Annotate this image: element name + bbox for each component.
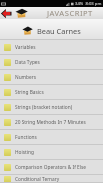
button[interactable]: Back: [0, 7, 14, 19]
staticText: Conditional Ternary: [15, 176, 60, 183]
staticText: Variables: [15, 44, 36, 51]
button[interactable]: Hoisting: [0, 145, 103, 160]
staticText: Hoisting: [15, 149, 34, 156]
staticText: Comparison Operators & If Else: [15, 164, 87, 171]
staticText: JAVASCRIPT: [47, 8, 93, 18]
staticText: Beau Carnes: [37, 26, 81, 36]
button[interactable]: Functions: [0, 130, 103, 145]
button[interactable]: Data Types: [0, 55, 103, 70]
button[interactable]: Beau Carnes: [0, 19, 103, 40]
staticText: Data Types: [15, 59, 40, 66]
button[interactable]: String Basics: [0, 85, 103, 100]
button[interactable]: Variables: [0, 40, 103, 55]
staticText: Strings (bracket notation): [15, 104, 73, 111]
button[interactable]: Comparison Operators & If Else: [0, 160, 103, 175]
staticText: 20 String Methods In 7 Minutes: [15, 119, 86, 126]
button[interactable]: 20 String Methods In 7 Minutes: [0, 115, 103, 130]
button[interactable]: Numbers: [0, 70, 103, 85]
button[interactable]: Strings (bracket notation): [0, 100, 103, 115]
staticText: Functions: [15, 134, 37, 141]
button[interactable]: Conditional Ternary: [0, 175, 103, 183]
staticText: Numbers: [15, 74, 37, 81]
staticText: 34% 8:03 pm: [75, 1, 102, 7]
staticText: String Basics: [15, 89, 44, 96]
